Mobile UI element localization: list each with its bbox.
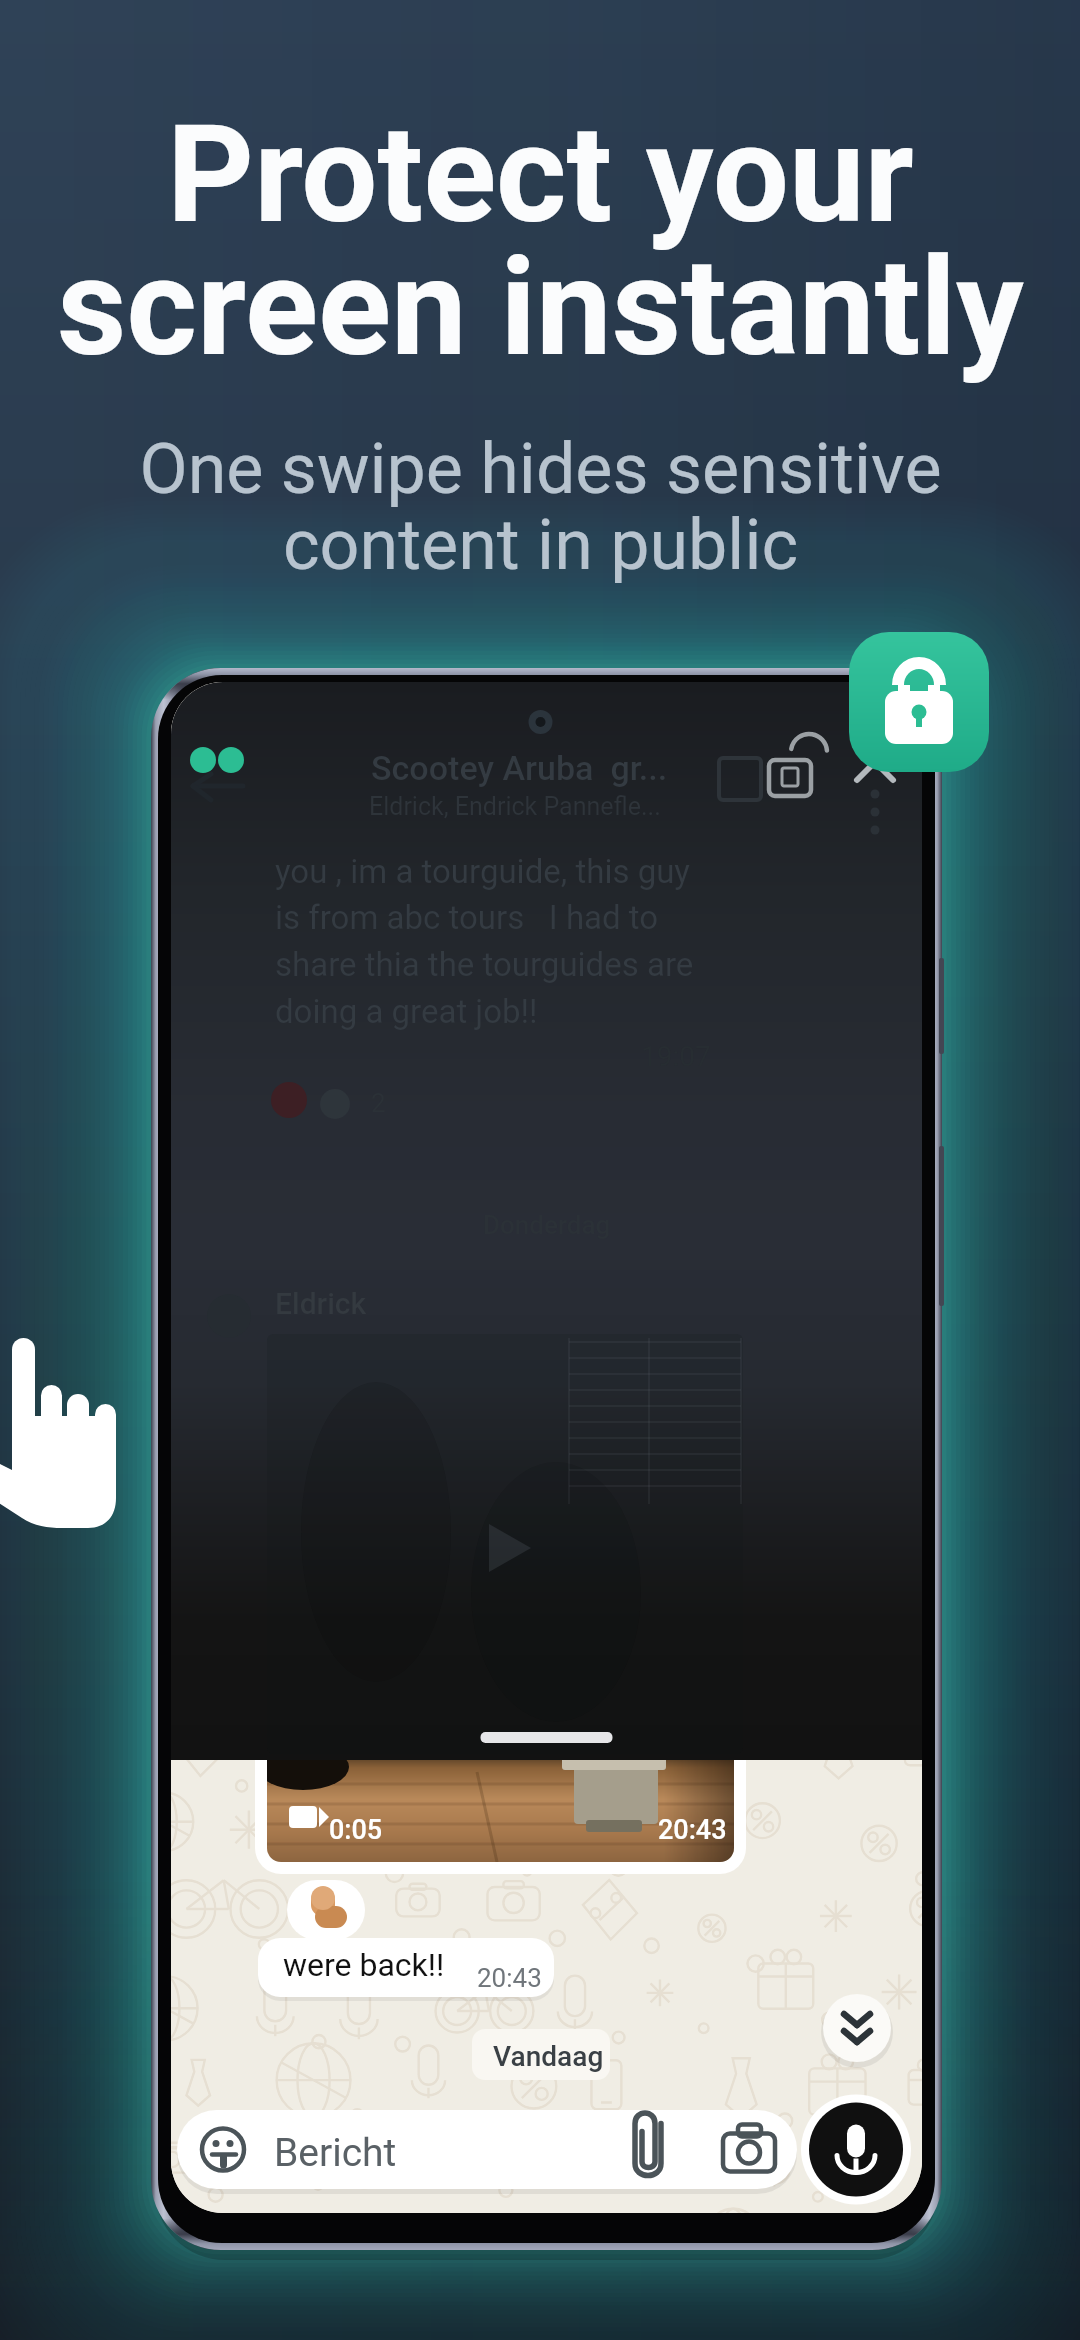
button[interactable]: Message input, Bericht — [177, 2110, 797, 2189]
staticText: Protect your screen instantly — [57, 96, 1024, 387]
button[interactable]: Attach — [619, 2120, 679, 2180]
button[interactable]: Lock screen — [849, 632, 989, 772]
button[interactable]: Close — [849, 734, 903, 788]
button[interactable]: Emoji — [195, 2120, 253, 2178]
button[interactable]: Scroll to bottom — [789, 1994, 857, 2062]
staticText: Eldrick, Endrick Pannefle... — [369, 792, 661, 821]
staticText: Scootey Aruba gr... — [371, 748, 668, 788]
staticText: were back!! — [283, 1946, 445, 1984]
staticText: 20:43 — [477, 1963, 542, 1993]
staticText: 20:43 — [658, 1814, 727, 1846]
staticText: 0:05 — [329, 1814, 383, 1846]
button[interactable]: More options — [851, 780, 901, 846]
button[interactable] — [258, 1938, 554, 1997]
button[interactable]: Screenshot — [711, 750, 771, 810]
button[interactable]: Camera — [719, 2120, 779, 2180]
staticText: Bericht — [274, 2130, 397, 2176]
other: Swipe down gesture — [0, 1320, 140, 1550]
staticText: Eldrick — [275, 1286, 367, 1321]
button[interactable]: Unlock screen — [763, 730, 827, 806]
button[interactable]: Video message, 0:05, 20:43 — [257, 1538, 744, 1872]
staticText: One swipe hides sensitive content in pub… — [139, 428, 942, 586]
button[interactable]: Record voice message — [809, 2102, 903, 2196]
button[interactable]: Back — [177, 744, 263, 808]
staticText: Vandaag — [493, 2040, 604, 2073]
staticText: you , im a tourguide, this guy is from a… — [275, 852, 694, 1031]
